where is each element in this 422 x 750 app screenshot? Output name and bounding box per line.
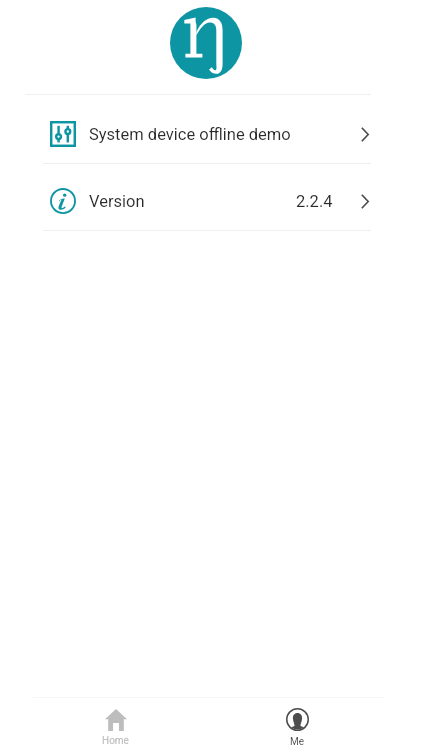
staticText: 2.2.4 [296, 192, 333, 211]
staticText: Me [290, 736, 305, 748]
button[interactable]: Me [257, 698, 337, 750]
staticText: Home [102, 735, 129, 747]
button[interactable]: About [0, 164, 422, 230]
staticText: System device offline demo [89, 125, 291, 144]
other: Device settings [50, 121, 76, 147]
button[interactable]: Home [75, 698, 155, 750]
button[interactable]: Device settings [0, 95, 422, 163]
other: About [50, 188, 76, 214]
staticText: Version [89, 192, 145, 211]
